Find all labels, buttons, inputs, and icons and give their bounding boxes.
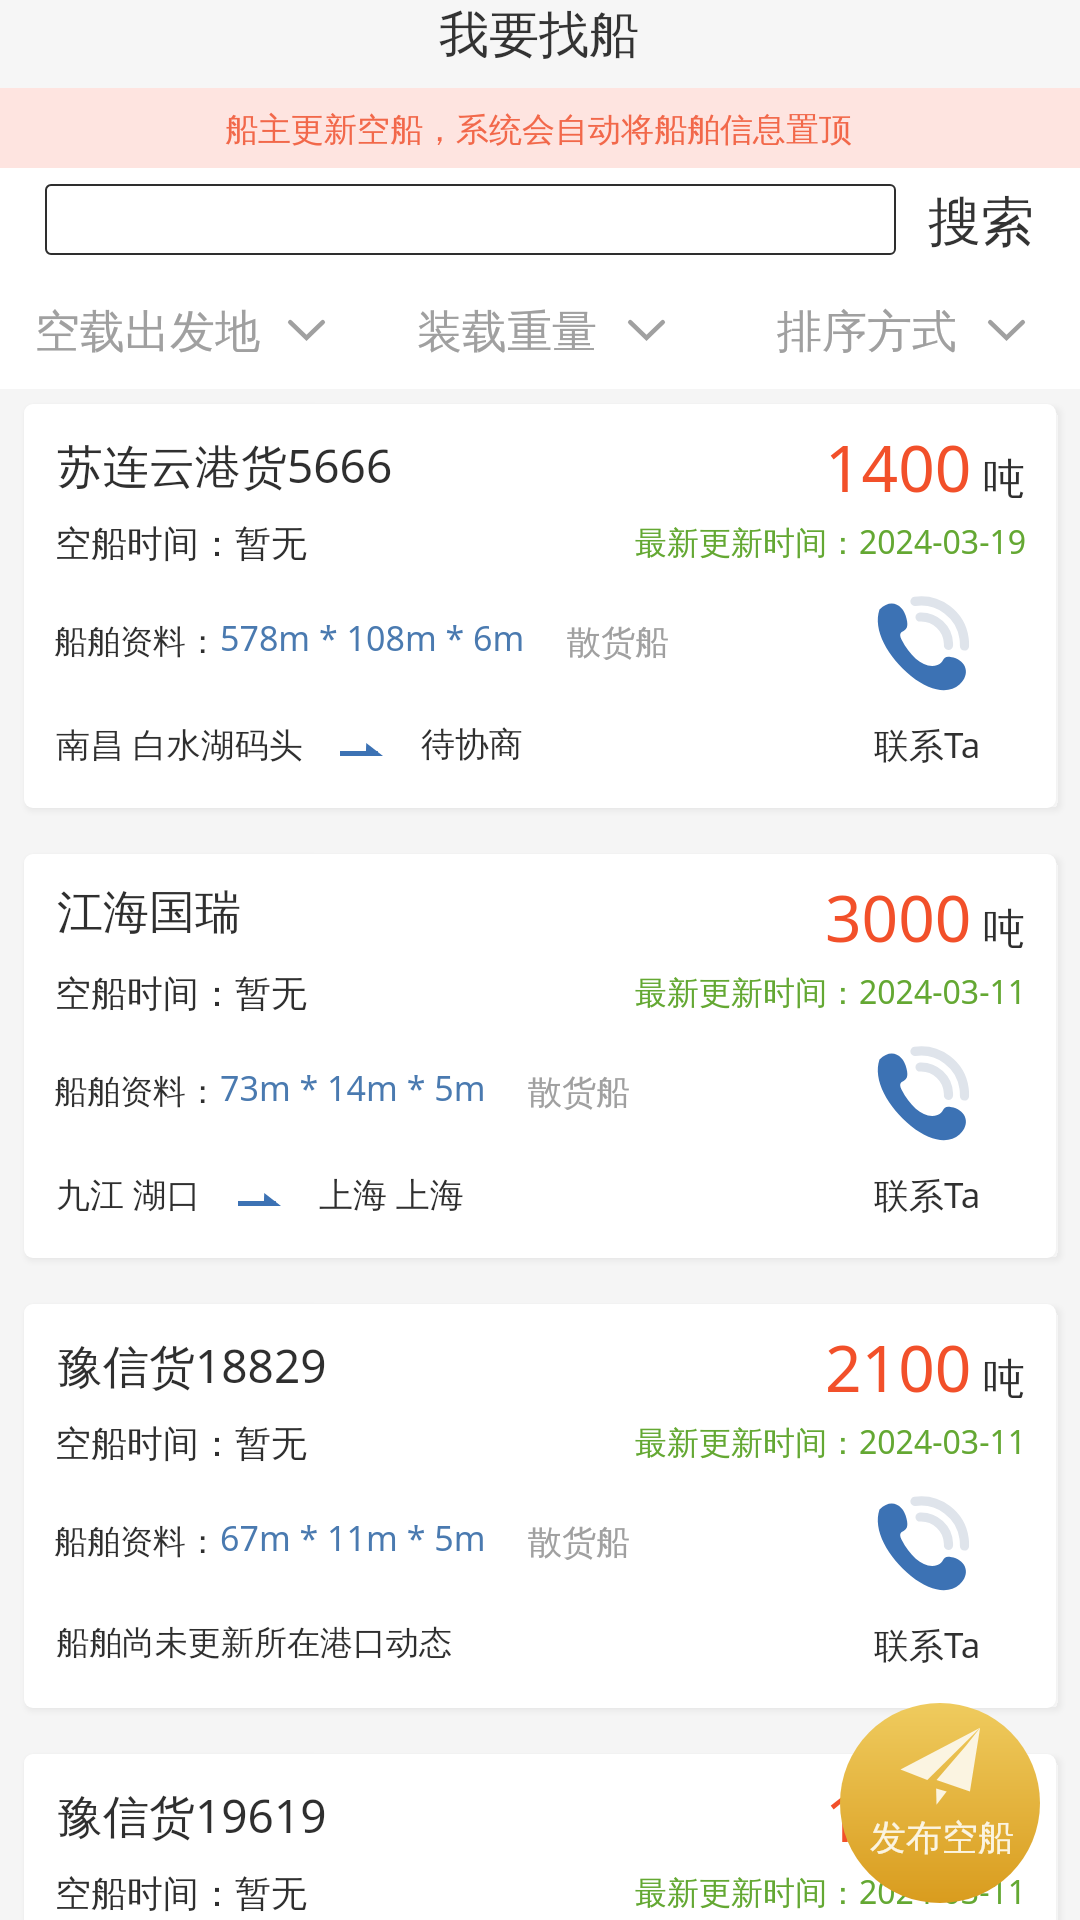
staticText: 待协商 bbox=[421, 723, 523, 766]
staticText: 联系Ta bbox=[874, 1171, 981, 1219]
staticText: 吨 bbox=[983, 903, 1025, 956]
staticText: 船舶资料： bbox=[54, 621, 219, 663]
staticText: 发布空船 bbox=[870, 1815, 1014, 1860]
staticText: 67m * 11m * 5m bbox=[220, 1515, 486, 1561]
button[interactable]: 发布空船 bbox=[840, 1703, 1040, 1903]
staticText: 最新更新时间：2024-03-19 bbox=[635, 520, 1027, 564]
button[interactable] bbox=[45, 184, 896, 255]
button[interactable]: 联系Ta bbox=[840, 1026, 1030, 1218]
staticText: 空船时间：暂无 bbox=[55, 971, 307, 1016]
staticText: 1400 bbox=[825, 424, 972, 511]
staticText: 船主更新空船，系统会自动将船舶信息置顶 bbox=[225, 109, 852, 151]
staticText: 73m * 14m * 5m bbox=[220, 1065, 486, 1111]
staticText: 装载重量 bbox=[417, 304, 597, 361]
staticText: 排序方式 bbox=[777, 304, 957, 361]
button[interactable]: 空载出发地 bbox=[13, 274, 324, 368]
staticText: 吨 bbox=[983, 453, 1025, 506]
staticText: 搜索 bbox=[928, 189, 1034, 256]
staticText: 空船时间：暂无 bbox=[55, 521, 307, 566]
staticText: 578m * 108m * 6m bbox=[220, 615, 525, 661]
staticText: 豫信货19619 bbox=[57, 1784, 327, 1847]
button[interactable]: 苏连云港货5666 bbox=[24, 404, 1056, 808]
staticText: 2100 bbox=[825, 1324, 972, 1411]
staticText: 吨 bbox=[983, 1353, 1025, 1406]
staticText: 九江 湖口 bbox=[56, 1171, 201, 1217]
staticText: 空船时间：暂无 bbox=[55, 1871, 307, 1916]
button[interactable]: 江海国瑞 bbox=[24, 854, 1056, 1258]
staticText: 空船时间：暂无 bbox=[55, 1421, 307, 1466]
button[interactable]: 排序方式 bbox=[755, 274, 1024, 368]
button[interactable]: 豫信货18829 bbox=[24, 1304, 1056, 1708]
staticText: 最新更新时间：2024-03-11 bbox=[635, 1420, 1027, 1464]
staticText: 1800 bbox=[825, 1774, 972, 1861]
button[interactable]: 搜索 bbox=[915, 182, 1047, 257]
staticText: 我要找船 bbox=[439, 4, 639, 67]
staticText: 豫信货18829 bbox=[57, 1334, 327, 1397]
staticText: 3000 bbox=[825, 874, 972, 961]
button[interactable]: 装载重量 bbox=[395, 274, 664, 368]
staticText: 船舶资料： bbox=[54, 1071, 219, 1113]
staticText: 船舶资料： bbox=[54, 1521, 219, 1563]
staticText: 船舶尚未更新所在港口动态 bbox=[56, 1622, 452, 1664]
staticText: 苏连云港货5666 bbox=[57, 434, 393, 497]
staticText: 散货船 bbox=[528, 1071, 630, 1114]
staticText: 空载出发地 bbox=[35, 304, 260, 361]
staticText: 南昌 白水湖码头 bbox=[56, 721, 303, 767]
staticText: 联系Ta bbox=[874, 721, 981, 769]
staticText: 散货船 bbox=[567, 621, 669, 664]
staticText: 最新更新时间：2024-03-11 bbox=[635, 970, 1027, 1014]
staticText: 联系Ta bbox=[874, 1621, 981, 1669]
button[interactable]: 联系Ta bbox=[840, 576, 1030, 768]
staticText: 最新更新时间：2024-03-11 bbox=[635, 1870, 1027, 1914]
staticText: 吨 bbox=[983, 1803, 1025, 1856]
staticText: 上海 上海 bbox=[319, 1171, 464, 1217]
button[interactable]: 豫信货19619 bbox=[24, 1754, 1056, 1920]
staticText: 江海国瑞 bbox=[57, 884, 241, 942]
button[interactable]: 联系Ta bbox=[840, 1476, 1030, 1668]
staticText: 散货船 bbox=[528, 1521, 630, 1564]
